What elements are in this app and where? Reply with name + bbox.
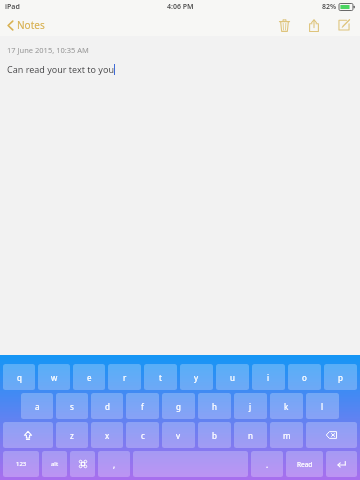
staticText: t [159, 372, 162, 383]
button[interactable]: l [306, 393, 339, 419]
button[interactable]: b [198, 422, 231, 448]
staticText: b [212, 430, 217, 441]
button[interactable]: r [108, 364, 141, 390]
staticText: p [338, 372, 343, 383]
staticText: w [51, 372, 58, 383]
button[interactable]: h [198, 393, 231, 419]
button[interactable]: x [91, 422, 123, 448]
staticText: r [123, 372, 127, 383]
staticText: u [230, 372, 235, 383]
staticText: i [267, 372, 270, 383]
button[interactable]: u [216, 364, 249, 390]
staticText: y [194, 372, 199, 383]
staticText: g [176, 401, 181, 412]
staticText: h [212, 401, 217, 412]
button[interactable]: i [252, 364, 285, 390]
button[interactable]: j [234, 393, 267, 419]
staticText: d [105, 401, 110, 412]
staticText: f [141, 401, 144, 412]
staticText: Can read your text to you [7, 63, 114, 75]
button[interactable]: v [162, 422, 195, 448]
button[interactable]: Shift [3, 422, 53, 448]
button[interactable]: o [288, 364, 321, 390]
staticText: alt [51, 460, 59, 468]
button[interactable]: , [98, 451, 130, 477]
button[interactable]: Compose [334, 15, 354, 35]
button[interactable]: q [3, 364, 35, 390]
staticText: 123 [16, 460, 27, 468]
button[interactable]: . [251, 451, 283, 477]
staticText: iPad [5, 2, 20, 12]
staticText: v [176, 430, 181, 441]
staticText: 82% [322, 2, 337, 12]
button[interactable]: w [38, 364, 70, 390]
staticText: o [302, 372, 307, 383]
button[interactable]: alt [42, 451, 67, 477]
staticText: a [35, 401, 40, 412]
button[interactable]: t [144, 364, 177, 390]
button[interactable]: Backspace [306, 422, 357, 448]
staticText: e [87, 372, 92, 383]
button[interactable]: y [180, 364, 213, 390]
staticText: . [266, 459, 269, 470]
staticText: c [141, 430, 145, 441]
button[interactable]: Notes [0, 15, 53, 35]
button[interactable]: n [234, 422, 267, 448]
staticText: Notes [17, 18, 45, 32]
button[interactable]: c [126, 422, 159, 448]
button[interactable]: d [91, 393, 123, 419]
staticText: n [248, 430, 253, 441]
staticText: x [105, 430, 110, 441]
staticText: s [70, 401, 74, 412]
button[interactable]: e [73, 364, 105, 390]
button[interactable]: k [270, 393, 303, 419]
button[interactable]: a [21, 393, 53, 419]
staticText: m [283, 430, 291, 441]
staticText: k [284, 401, 289, 412]
button[interactable]: z [56, 422, 88, 448]
staticText: , [113, 459, 116, 470]
button[interactable]: Command [70, 451, 95, 477]
button[interactable]: Read [286, 451, 323, 477]
staticText: q [17, 372, 22, 383]
staticText: z [70, 430, 74, 441]
button[interactable]: Space [133, 451, 248, 477]
button[interactable]: p [324, 364, 357, 390]
button[interactable]: Return [326, 451, 357, 477]
button[interactable]: f [126, 393, 159, 419]
button[interactable]: g [162, 393, 195, 419]
button[interactable]: 123 [3, 451, 39, 477]
staticText: l [321, 401, 324, 412]
staticText: j [249, 401, 252, 412]
button[interactable]: Share [304, 15, 324, 35]
staticText: 4:06 PM [167, 2, 194, 12]
button[interactable]: s [56, 393, 88, 419]
button[interactable]: Delete [274, 15, 294, 35]
button[interactable]: m [270, 422, 303, 448]
staticText: 17 June 2015, 10:35 AM [7, 45, 89, 55]
staticText: Read [297, 460, 313, 469]
